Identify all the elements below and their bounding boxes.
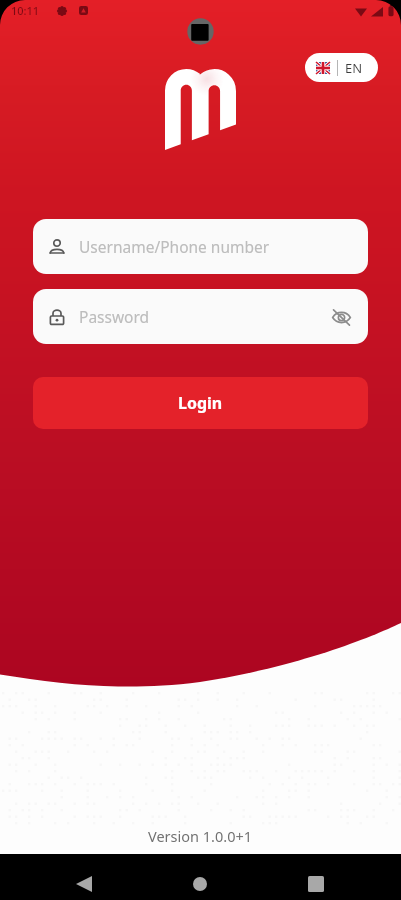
button[interactable]: Home [176,861,224,900]
button[interactable]: Login [33,377,368,429]
button[interactable]: Password [33,289,368,344]
staticText: EN [345,59,363,77]
staticText: 10:11 [11,3,40,18]
button[interactable]: Show password [326,302,356,332]
staticText: Password [79,306,150,327]
button[interactable]: Language EN [305,53,378,82]
staticText: Version 1.0.0+1 [148,826,253,846]
button[interactable]: Back [60,861,108,900]
staticText: Login [178,392,223,414]
button[interactable]: Recent apps [292,861,340,900]
staticText: Username/Phone number [79,236,270,257]
button[interactable]: Username/Phone number [33,219,368,274]
